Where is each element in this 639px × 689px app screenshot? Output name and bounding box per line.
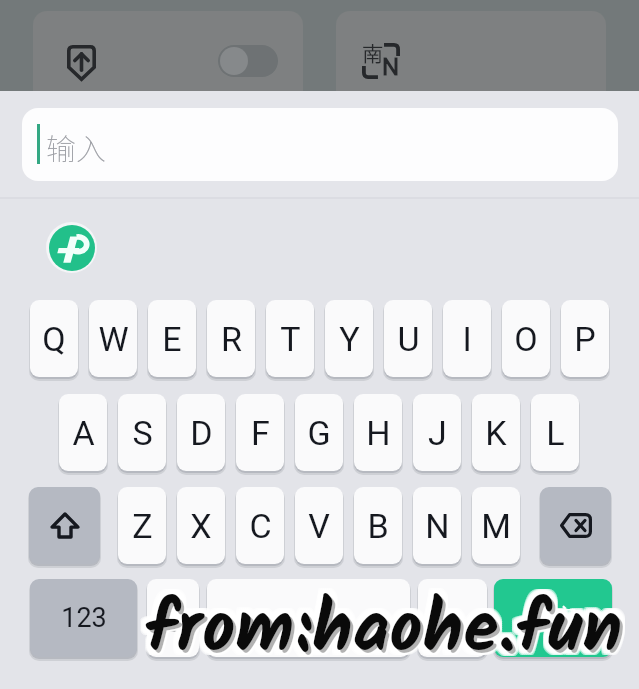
- button[interactable]: [207, 579, 410, 657]
- staticText: C: [249, 506, 272, 546]
- staticText: A: [72, 413, 95, 453]
- staticText: from:haohe.fun: [140, 581, 618, 689]
- button[interactable]: 确定: [494, 579, 612, 657]
- staticText: H: [366, 413, 391, 453]
- button[interactable]: Y: [325, 300, 373, 377]
- staticText: J: [428, 413, 447, 453]
- staticText: from:haohe.fun: [142, 581, 620, 689]
- staticText: from:haohe.fun: [146, 575, 624, 688]
- button[interactable]: R: [207, 300, 255, 377]
- staticText: from:haohe.fun: [142, 577, 620, 689]
- button[interactable]: Emoji: [147, 579, 199, 657]
- button[interactable]: Z: [118, 487, 166, 564]
- staticText: from:haohe.fun: [146, 573, 624, 686]
- staticText: from:haohe.fun: [144, 575, 622, 688]
- staticText: B: [367, 506, 389, 546]
- staticText: from:haohe.fun: [144, 579, 622, 689]
- staticText: O: [514, 319, 538, 359]
- staticText: from:haohe.fun: [140, 571, 618, 684]
- staticText: 南: [362, 38, 383, 68]
- button[interactable]: N: [413, 487, 461, 564]
- staticText: N: [382, 53, 400, 81]
- staticText: from:haohe.fun: [140, 573, 618, 686]
- button[interactable]: P: [561, 300, 609, 377]
- button[interactable]: S: [118, 394, 166, 471]
- button[interactable]: C: [236, 487, 284, 564]
- staticText: from:haohe.fun: [148, 577, 626, 689]
- button[interactable]: Input method logo: [46, 222, 97, 273]
- button[interactable]: Shift: [29, 487, 100, 564]
- staticText: E: [162, 319, 182, 359]
- staticText: from:haohe.fun: [146, 577, 624, 689]
- staticText: from:haohe.fun: [140, 579, 618, 689]
- button[interactable]: ，: [418, 579, 487, 657]
- button[interactable]: 123: [30, 579, 137, 657]
- staticText: ，: [441, 603, 465, 633]
- staticText: from:haohe.fun: [144, 573, 622, 686]
- staticText: G: [307, 413, 331, 453]
- button[interactable]: 输入: [22, 108, 618, 181]
- button[interactable]: U: [384, 300, 432, 377]
- staticText: 输入: [46, 125, 106, 168]
- staticText: from:haohe.fun: [146, 579, 624, 689]
- staticText: from:haohe.fun: [148, 581, 626, 689]
- button[interactable]: Toggle: [218, 45, 278, 77]
- staticText: from:haohe.fun: [148, 573, 626, 686]
- button[interactable]: W: [89, 300, 137, 377]
- staticText: from:haohe.fun: [140, 575, 618, 688]
- staticText: from:haohe.fun: [144, 571, 622, 684]
- staticText: from:haohe.fun: [150, 575, 628, 688]
- button[interactable]: G: [295, 394, 343, 471]
- staticText: from:haohe.fun: [148, 571, 626, 684]
- button[interactable]: J: [413, 394, 461, 471]
- button[interactable]: F: [236, 394, 284, 471]
- button[interactable]: Q: [30, 300, 78, 377]
- button[interactable]: X: [177, 487, 225, 564]
- button[interactable]: O: [502, 300, 550, 377]
- staticText: Q: [42, 319, 66, 359]
- staticText: V: [308, 506, 330, 546]
- button[interactable]: Backspace: [540, 487, 611, 564]
- staticText: from:haohe.fun: [142, 579, 620, 689]
- staticText: from:haohe.fun: [142, 571, 620, 684]
- button[interactable]: H: [354, 394, 402, 471]
- staticText: T: [280, 319, 301, 359]
- button[interactable]: I: [443, 300, 491, 377]
- button[interactable]: M: [472, 487, 520, 564]
- staticText: from:haohe.fun: [148, 579, 626, 689]
- staticText: from:haohe.fun: [146, 581, 624, 689]
- staticText: M: [481, 506, 511, 546]
- button[interactable]: L: [531, 394, 579, 471]
- staticText: Z: [132, 506, 153, 546]
- staticText: from:haohe.fun: [148, 575, 626, 688]
- staticText: from:haohe.fun: [144, 577, 622, 689]
- staticText: from:haohe.fun: [144, 581, 622, 689]
- button[interactable]: Upload: [57, 38, 105, 88]
- staticText: from:haohe.fun: [142, 573, 620, 686]
- staticText: S: [132, 413, 153, 453]
- staticText: from:haohe.fun: [140, 577, 618, 689]
- staticText: F: [251, 413, 270, 453]
- staticText: N: [425, 506, 450, 546]
- staticText: from:haohe.fun: [150, 577, 628, 689]
- button[interactable]: Switch input language: [362, 43, 400, 79]
- staticText: from:haohe.fun: [146, 571, 624, 684]
- button[interactable]: A: [59, 394, 107, 471]
- button[interactable]: B: [354, 487, 402, 564]
- staticText: I: [462, 319, 472, 359]
- button[interactable]: V: [295, 487, 343, 564]
- button[interactable]: T: [266, 300, 314, 377]
- staticText: from:haohe.fun: [150, 573, 628, 686]
- staticText: 123: [61, 602, 107, 634]
- button[interactable]: K: [472, 394, 520, 471]
- staticText: X: [190, 506, 212, 546]
- staticText: 确定: [528, 603, 578, 634]
- button[interactable]: E: [148, 300, 196, 377]
- staticText: L: [546, 413, 565, 453]
- staticText: W: [98, 319, 129, 359]
- staticText: from:haohe.fun: [142, 575, 620, 688]
- staticText: K: [485, 413, 507, 453]
- button[interactable]: D: [177, 394, 225, 471]
- staticText: from:haohe.fun: [150, 571, 628, 684]
- staticText: from:haohe.fun: [150, 579, 628, 689]
